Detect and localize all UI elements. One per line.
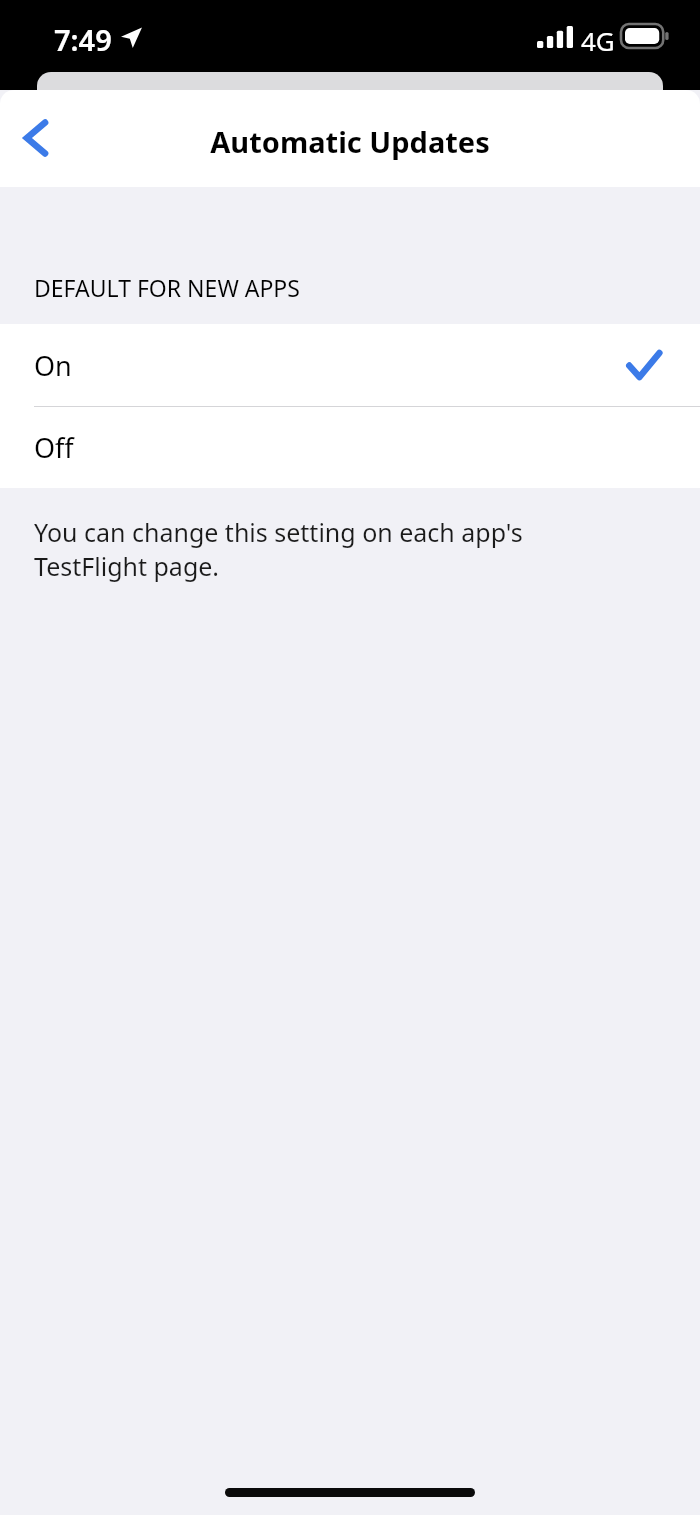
staticText: You can change this setting on each app'… [34, 515, 594, 583]
staticText: Automatic Updates [0, 122, 700, 161]
staticText: 7:49 [54, 20, 112, 59]
button[interactable]: Off [0, 407, 700, 488]
staticText: On [34, 347, 72, 384]
button[interactable]: Back [6, 107, 66, 169]
staticText: DEFAULT FOR NEW APPS [34, 272, 300, 303]
button[interactable]: On [0, 324, 700, 406]
staticText: 4G [581, 23, 615, 58]
staticText: Off [34, 429, 74, 466]
